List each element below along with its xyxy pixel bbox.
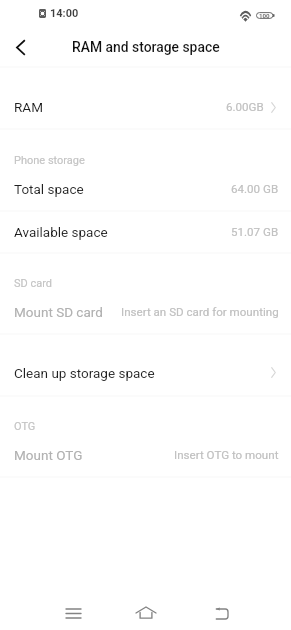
button[interactable]: Total space — [0, 167, 291, 211]
button[interactable]: Recent apps — [50, 590, 96, 630]
staticText: OTG — [14, 420, 36, 433]
button[interactable]: Back — [0, 27, 40, 67]
button[interactable]: Clean up storage space — [0, 350, 291, 395]
staticText: 100 — [259, 12, 270, 19]
button[interactable]: RAM — [0, 85, 291, 129]
button[interactable]: Mount OTG — [0, 433, 291, 476]
staticText: RAM — [14, 99, 43, 115]
button[interactable]: Back — [198, 591, 244, 630]
staticText: SD card — [14, 277, 53, 290]
staticText: RAM and storage space — [72, 39, 220, 55]
staticText: Clean up storage space — [14, 365, 155, 381]
button[interactable]: Available space — [0, 211, 291, 253]
button[interactable]: Mount SD card — [0, 290, 291, 333]
staticText: Total space — [14, 181, 84, 197]
staticText: Mount SD card — [14, 304, 103, 320]
staticText: Mount OTG — [14, 447, 83, 463]
staticText: 6.00GB — [226, 100, 264, 114]
staticText: 51.07 GB — [231, 225, 279, 239]
staticText: Insert OTG to mount — [174, 448, 279, 462]
staticText: Insert an SD card for mounting — [121, 305, 279, 319]
staticText: 14:00 — [50, 7, 79, 20]
staticText: Available space — [14, 224, 108, 240]
staticText: Phone storage — [14, 154, 85, 167]
button[interactable]: Home — [123, 590, 169, 630]
staticText: 64.00 GB — [231, 182, 279, 196]
